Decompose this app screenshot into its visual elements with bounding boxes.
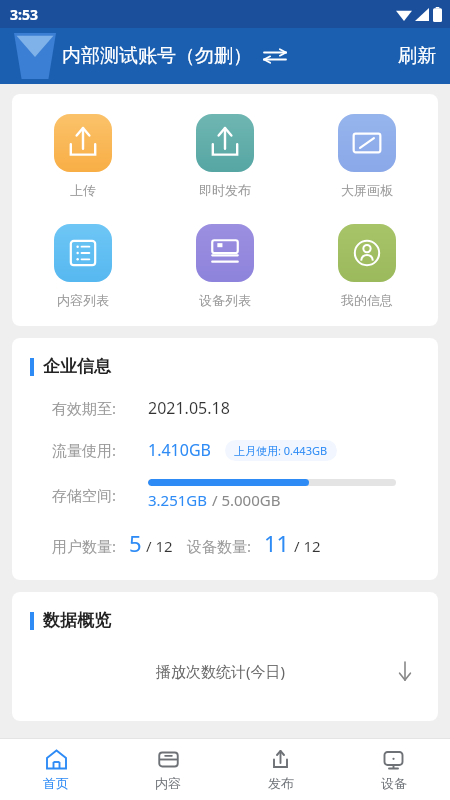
staticText: / 12	[142, 536, 173, 556]
button[interactable]: Switch account	[258, 39, 292, 73]
staticText: 上传	[70, 182, 96, 198]
staticText: 存储空间:	[52, 485, 148, 505]
staticText: 用户数量:	[52, 536, 117, 556]
staticText: 流量使用:	[52, 440, 148, 460]
staticText: 设备数量:	[187, 536, 252, 556]
staticText: 刷新	[398, 44, 436, 68]
staticText: 发布	[268, 775, 294, 791]
button[interactable]: 首页	[0, 738, 112, 800]
staticText: 数据概览	[43, 610, 111, 631]
button[interactable]: 上传	[12, 112, 154, 200]
staticText: 企业信息	[43, 356, 111, 377]
staticText: 3.251GB	[148, 490, 208, 510]
staticText: 5	[129, 528, 142, 558]
button[interactable]: 发布	[224, 738, 337, 800]
staticText: 播放次数统计(今日)	[156, 661, 286, 681]
staticText: 内容列表	[57, 292, 109, 308]
button[interactable]: 我的信息	[296, 222, 438, 310]
button[interactable]: 内容	[112, 738, 224, 800]
staticText: 1.410GB	[148, 439, 211, 461]
button[interactable]: 即时发布	[154, 112, 296, 200]
staticText: 11	[264, 528, 290, 558]
button[interactable]: 设备列表	[154, 222, 296, 310]
staticText: / 5.000GB	[208, 490, 281, 510]
staticText: 3:53	[10, 5, 38, 24]
button[interactable]: 设备	[337, 738, 450, 800]
staticText: 大屏画板	[341, 182, 393, 198]
staticText: 内部测试账号（勿删）	[62, 44, 252, 68]
staticText: 上月使用: 0.443GB	[234, 443, 328, 458]
button[interactable]: 大屏画板	[296, 112, 438, 200]
staticText: 即时发布	[199, 182, 251, 198]
button[interactable]: 刷新	[384, 28, 450, 84]
staticText: 2021.05.18	[148, 397, 230, 419]
staticText: 设备列表	[199, 292, 251, 308]
staticText: 有效期至:	[52, 398, 148, 418]
staticText: 我的信息	[341, 292, 393, 308]
staticText: 设备	[381, 775, 407, 791]
staticText: / 12	[290, 536, 321, 556]
staticText: 内容	[155, 775, 181, 791]
button[interactable]: 内容列表	[12, 222, 154, 310]
staticText: 首页	[43, 775, 69, 791]
